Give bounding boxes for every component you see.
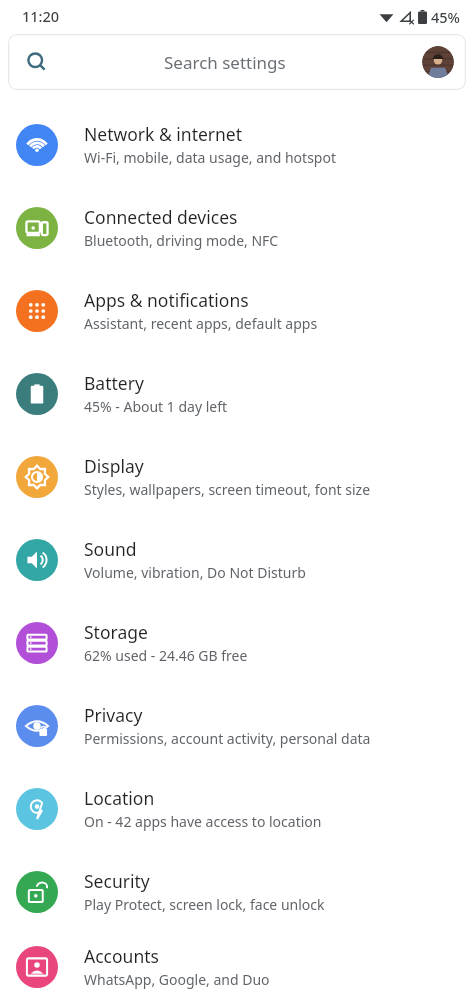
button[interactable]: Storage bbox=[0, 601, 474, 684]
button[interactable]: Display bbox=[0, 435, 474, 518]
button[interactable]: Location bbox=[0, 767, 474, 850]
button[interactable]: Search settings bbox=[8, 34, 466, 90]
button[interactable]: Connected devices bbox=[0, 186, 474, 269]
staticText: Play Protect, screen lock, face unlock bbox=[84, 895, 325, 914]
button[interactable]: Accounts bbox=[0, 933, 474, 1000]
button[interactable]: Privacy bbox=[0, 684, 474, 767]
staticText: Permissions, account activity, personal … bbox=[84, 729, 371, 748]
staticText: Accounts bbox=[84, 944, 159, 968]
button[interactable]: Network & internet bbox=[0, 103, 474, 186]
staticText: WhatsApp, Google, and Duo bbox=[84, 970, 270, 989]
button[interactable]: Security bbox=[0, 850, 474, 933]
staticText: Privacy bbox=[84, 703, 143, 727]
staticText: 45% - About 1 day left bbox=[84, 397, 228, 416]
staticText: Volume, vibration, Do Not Disturb bbox=[84, 563, 306, 582]
staticText: Display bbox=[84, 454, 144, 478]
staticText: Styles, wallpapers, screen timeout, font… bbox=[84, 480, 371, 499]
staticText: 45% bbox=[431, 7, 460, 27]
button[interactable]: Account profile bbox=[422, 46, 454, 78]
staticText: Apps & notifications bbox=[84, 288, 249, 312]
staticText: Network & internet bbox=[84, 122, 243, 146]
staticText: 11:20 bbox=[22, 6, 60, 26]
staticText: Bluetooth, driving mode, NFC bbox=[84, 231, 279, 250]
button[interactable]: Battery bbox=[0, 352, 474, 435]
staticText: Battery bbox=[84, 371, 144, 395]
staticText: Location bbox=[84, 786, 155, 810]
button[interactable]: Sound bbox=[0, 518, 474, 601]
staticText: Connected devices bbox=[84, 205, 238, 229]
staticText: On - 42 apps have access to location bbox=[84, 812, 322, 831]
staticText: Sound bbox=[84, 537, 137, 561]
staticText: Search settings bbox=[164, 51, 286, 74]
staticText: 62% used - 24.46 GB free bbox=[84, 646, 248, 665]
staticText: Assistant, recent apps, default apps bbox=[84, 314, 318, 333]
staticText: Wi-Fi, mobile, data usage, and hotspot bbox=[84, 148, 336, 167]
staticText: Storage bbox=[84, 620, 148, 644]
button[interactable]: Apps & notifications bbox=[0, 269, 474, 352]
staticText: Security bbox=[84, 869, 150, 893]
